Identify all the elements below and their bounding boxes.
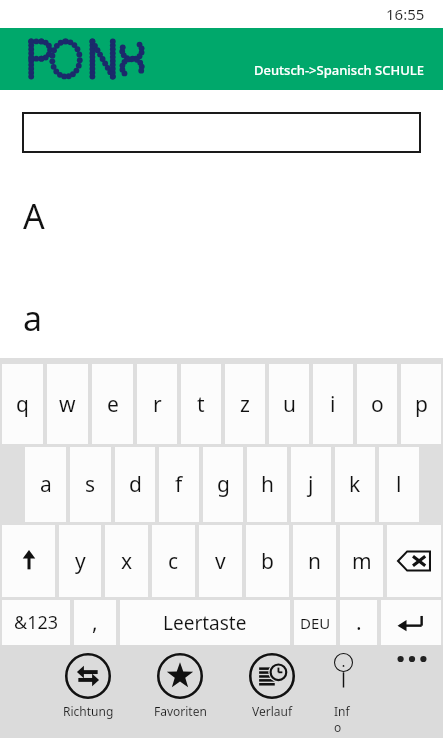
button[interactable]: r [137, 364, 177, 444]
button[interactable]: DEU [294, 600, 336, 645]
button[interactable]: q [2, 364, 43, 444]
staticText: b [261, 547, 274, 576]
button[interactable]: y [59, 525, 101, 597]
button[interactable]: Leertaste [120, 600, 290, 645]
staticText: s [85, 470, 96, 499]
other: Richtung [65, 653, 111, 699]
button[interactable]: m [340, 525, 383, 597]
button[interactable]: b [246, 525, 289, 597]
staticText: n [308, 547, 321, 576]
button[interactable]: o [357, 364, 397, 444]
button[interactable]: e [92, 364, 133, 444]
button[interactable]: , [74, 600, 116, 645]
staticText: y [75, 547, 86, 576]
button[interactable]: Richtung [58, 653, 118, 719]
staticText: a [23, 295, 43, 341]
staticText: e [107, 390, 119, 419]
button[interactable]: Shift [2, 525, 55, 597]
button[interactable]: v [199, 525, 242, 597]
staticText: Verlauf [252, 703, 293, 719]
staticText: 16:55 [386, 4, 425, 24]
staticText: m [352, 547, 372, 576]
staticText: x [121, 547, 133, 576]
staticText: k [349, 470, 361, 499]
staticText: DEU [300, 613, 331, 633]
staticText: f [175, 470, 183, 499]
staticText: Richtung [63, 703, 114, 719]
button[interactable] [22, 112, 421, 153]
staticText: v [215, 547, 226, 576]
other: Favoriten [157, 653, 203, 699]
staticText: g [217, 470, 230, 499]
button[interactable]: t [181, 364, 221, 444]
staticText: q [16, 390, 29, 419]
button[interactable]: s [70, 447, 111, 522]
staticText: c [168, 547, 179, 576]
staticText: u [283, 390, 296, 419]
button[interactable]: Verlauf [242, 653, 302, 719]
staticText: z [240, 390, 250, 419]
button[interactable]: a [25, 447, 66, 522]
button[interactable]: f [159, 447, 199, 522]
button[interactable]: . [340, 600, 377, 645]
button[interactable]: i [313, 364, 353, 444]
button[interactable]: d [115, 447, 155, 522]
button[interactable]: g [203, 447, 243, 522]
other: Verlauf [249, 653, 295, 699]
button[interactable]: Info [334, 653, 353, 735]
staticText: Leertaste [163, 610, 247, 636]
staticText: i [330, 390, 336, 419]
staticText: , [92, 608, 98, 637]
button[interactable]: l [379, 447, 419, 522]
button[interactable]: &123 [2, 600, 70, 645]
staticText: d [129, 470, 142, 499]
staticText: r [153, 390, 162, 419]
staticText: &123 [14, 610, 59, 635]
staticText: p [415, 390, 428, 419]
button[interactable]: z [225, 364, 265, 444]
button[interactable]: Backspace [387, 525, 441, 597]
other: Info [334, 653, 353, 699]
button[interactable]: Enter [381, 600, 441, 645]
button[interactable]: p [401, 364, 441, 444]
button[interactable]: n [293, 525, 336, 597]
button[interactable]: k [335, 447, 375, 522]
staticText: A [23, 193, 45, 239]
button[interactable]: c [152, 525, 195, 597]
staticText: Deutsch->Spanisch SCHULE [254, 61, 425, 79]
staticText: a [40, 470, 52, 499]
staticText: o [371, 390, 384, 419]
staticText: Favoriten [154, 703, 207, 719]
button[interactable]: x [105, 525, 148, 597]
staticText: Info [334, 703, 353, 735]
staticText: h [261, 470, 274, 499]
staticText: t [197, 390, 205, 419]
button[interactable]: u [269, 364, 309, 444]
button[interactable]: Favoriten [150, 653, 210, 719]
button[interactable]: w [47, 364, 88, 444]
staticText: . [356, 608, 362, 637]
button[interactable]: h [247, 447, 287, 522]
staticText: w [59, 390, 76, 419]
staticText: j [308, 470, 314, 499]
button[interactable]: j [291, 447, 331, 522]
staticText: l [396, 470, 402, 499]
